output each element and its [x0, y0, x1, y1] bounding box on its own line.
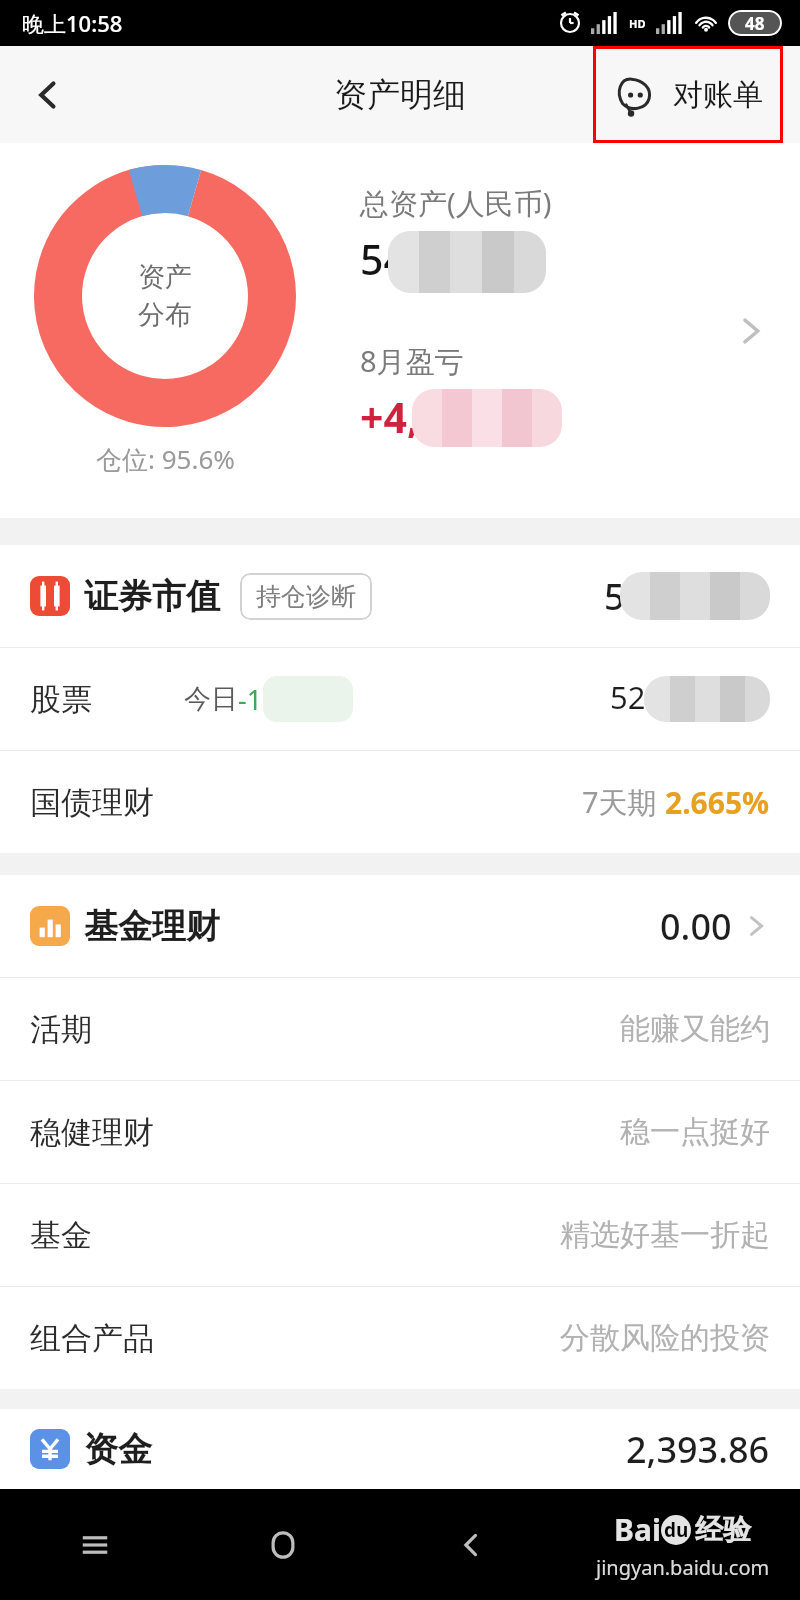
staticText: du: [664, 1517, 689, 1543]
staticText: 7天期: [582, 782, 665, 822]
staticText: -1: [238, 681, 263, 718]
button[interactable]: 基金: [0, 1184, 800, 1286]
button[interactable]: 资金: [0, 1409, 800, 1489]
staticText: 2,393.86: [626, 1425, 770, 1474]
button[interactable]: 基金理财: [0, 875, 800, 977]
staticText: jingyan.baidu.com: [596, 1554, 770, 1581]
button[interactable]: Back: [0, 46, 96, 143]
staticText: 持仓诊断: [256, 581, 356, 612]
button[interactable]: 组合产品: [0, 1287, 800, 1389]
staticText: 48: [745, 12, 765, 35]
button[interactable]: Recents: [0, 1489, 189, 1600]
staticText: 证券市值: [84, 575, 220, 618]
staticText: 今日: [184, 682, 238, 716]
staticText: 0.00: [660, 902, 732, 951]
staticText: 资产: [138, 260, 192, 294]
staticText: 国债理财: [30, 783, 154, 822]
button[interactable]: Back: [377, 1489, 565, 1600]
staticText: 5: [604, 572, 625, 621]
staticText: 54,: [360, 231, 419, 287]
staticText: 稳健理财: [30, 1113, 154, 1152]
staticText: 对账单: [673, 76, 763, 114]
staticText: 股票: [30, 680, 92, 719]
button[interactable]: Home: [189, 1489, 377, 1600]
button[interactable]: 证券市值: [0, 545, 800, 647]
staticText: 能赚又能约: [620, 1010, 770, 1048]
staticText: 基金: [30, 1216, 92, 1255]
staticText: Bai: [614, 1509, 661, 1550]
button[interactable]: 仓位: 95.6%: [0, 143, 800, 518]
button[interactable]: 对账单: [613, 46, 763, 143]
staticText: 活期: [30, 1010, 92, 1049]
staticText: 8月盈亏: [360, 341, 464, 381]
staticText: 资金: [84, 1428, 152, 1471]
staticText: 仓位: 95.6%: [96, 441, 235, 477]
button[interactable]: 国债理财: [0, 751, 800, 853]
staticText: 经验: [695, 1512, 751, 1547]
staticText: 晚上10:58: [22, 8, 123, 38]
staticText: 精选好基一折起: [560, 1216, 770, 1254]
staticText: HD: [629, 16, 646, 31]
staticText: +4,2: [360, 389, 443, 445]
staticText: 总资产(人民币): [360, 183, 552, 223]
staticText: 52: [610, 676, 646, 718]
staticText: 资产明细: [334, 74, 466, 116]
button[interactable]: 持仓诊断: [240, 573, 372, 620]
button[interactable]: 稳健理财: [0, 1081, 800, 1183]
staticText: 2.665%: [665, 782, 770, 823]
staticText: 分布: [138, 298, 192, 332]
staticText: 稳一点挺好: [620, 1113, 770, 1151]
staticText: 组合产品: [30, 1319, 154, 1358]
button[interactable]: 活期: [0, 978, 800, 1080]
button[interactable]: 股票: [0, 648, 800, 750]
staticText: 基金理财: [84, 905, 220, 948]
staticText: 分散风险的投资: [560, 1319, 770, 1357]
